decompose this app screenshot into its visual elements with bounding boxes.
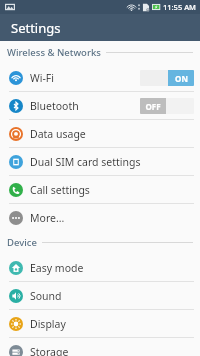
staticText: Data usage [30, 127, 86, 141]
button[interactable]: More... [0, 204, 200, 231]
staticText: Wireless & Networks [7, 46, 101, 59]
staticText: Wi-Fi [30, 71, 55, 85]
staticText: More... [30, 211, 65, 225]
staticText: ON [175, 73, 188, 84]
button[interactable]: Storage [0, 338, 200, 356]
button[interactable]: Toggle on [140, 70, 194, 86]
staticText: Storage [30, 345, 69, 356]
staticText: 11:55 AM [163, 2, 196, 12]
staticText: Device [7, 236, 37, 249]
staticText: Display [30, 317, 66, 331]
staticText: Settings [11, 19, 61, 37]
button[interactable]: Call settings [0, 176, 200, 203]
button[interactable]: Dual SIM card settings [0, 148, 200, 175]
staticText: OFF [145, 101, 161, 112]
button[interactable]: Wi-Fi [0, 64, 200, 91]
staticText: Bluetooth [30, 99, 79, 113]
staticText: Easy mode [30, 261, 84, 275]
button[interactable]: Sound [0, 282, 200, 309]
button[interactable]: Easy mode [0, 254, 200, 281]
button[interactable]: Data usage [0, 120, 200, 147]
button[interactable]: Display [0, 310, 200, 337]
button[interactable]: Bluetooth [0, 92, 200, 119]
staticText: Sound [30, 289, 62, 303]
staticText: Dual SIM card settings [30, 155, 141, 169]
staticText: Call settings [30, 183, 90, 197]
button[interactable]: Toggle off [140, 98, 194, 114]
